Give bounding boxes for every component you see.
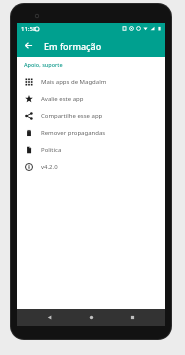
staticText: 11:58 [21,25,37,33]
button[interactable]: Back [41,309,58,326]
button[interactable]: Mais apps de Magdalm [17,73,165,90]
button[interactable]: Avalie este app [17,90,165,107]
button[interactable]: v4.2.0 [17,158,165,175]
button[interactable]: Home [83,309,100,326]
button[interactable]: Compartilhe esse app [17,107,165,124]
staticText: Avalie este app [41,95,84,103]
button[interactable]: Recent apps [124,309,141,326]
staticText: Em formação [44,40,102,52]
button[interactable]: Remover propagandas [17,124,165,141]
staticText: Remover propagandas [41,129,106,137]
staticText: v4.2.0 [41,163,58,171]
staticText: Compartilhe esse app [41,112,103,120]
staticText: Apoio, suporte [24,61,63,68]
button[interactable]: Back [17,34,40,57]
staticText: Mais apps de Magdalm [41,78,107,86]
button[interactable]: Política [17,141,165,158]
staticText: Política [41,146,62,154]
